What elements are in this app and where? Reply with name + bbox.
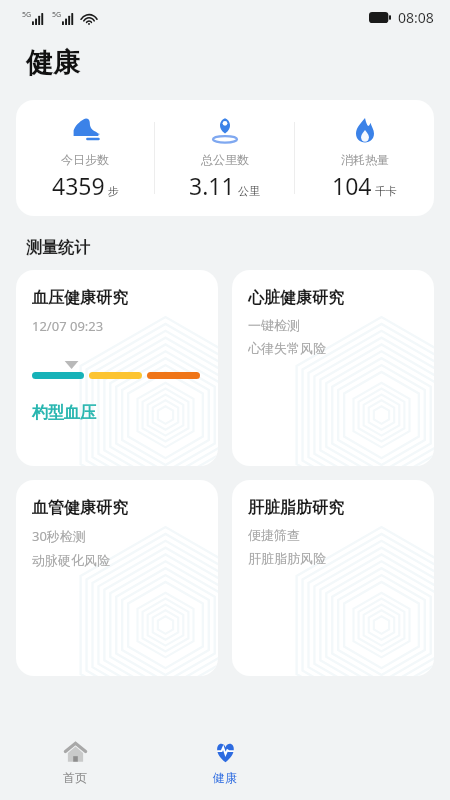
button[interactable]: 肝脏脂肪研究	[232, 480, 434, 676]
staticText: 健康	[26, 46, 80, 80]
staticText: 总公里数	[201, 152, 249, 167]
staticText: 首页	[63, 770, 87, 785]
staticText: 08:08	[398, 8, 434, 27]
other: 总公里数	[210, 115, 240, 145]
staticText: 12/07 09:23	[32, 317, 104, 335]
staticText: 104	[332, 170, 372, 201]
staticText: 5G	[22, 10, 32, 20]
staticText: 便捷筛查	[248, 527, 300, 543]
staticText: 肝脏脂肪研究	[248, 498, 344, 518]
staticText: 血压健康研究	[32, 288, 128, 308]
staticText: 一键检测	[248, 317, 300, 333]
staticText: 5G	[52, 10, 62, 20]
button[interactable]: 首页	[0, 726, 150, 800]
staticText: 公里	[238, 184, 260, 198]
button[interactable]: 血管健康研究	[16, 480, 218, 676]
staticText: 3.11	[189, 170, 235, 201]
staticText: 30秒检测	[32, 527, 86, 545]
staticText: 心脏健康研究	[248, 288, 344, 308]
staticText: 杓型血压	[32, 403, 96, 423]
staticText: 千卡	[375, 184, 397, 198]
button[interactable]: 消耗热量	[295, 100, 434, 216]
button[interactable]: 总公里数	[155, 100, 294, 216]
button[interactable]: 今日步数	[16, 100, 434, 216]
button[interactable]: 今日步数	[16, 100, 154, 216]
staticText: 心律失常风险	[248, 340, 326, 356]
staticText: 测量统计	[26, 238, 90, 258]
staticText: 今日步数	[61, 152, 109, 167]
staticText: 步	[108, 184, 119, 198]
staticText: 动脉硬化风险	[32, 552, 110, 568]
other: 消耗热量	[350, 115, 380, 145]
other: 今日步数	[70, 115, 100, 145]
staticText: 健康	[213, 770, 237, 785]
button[interactable]: 健康	[150, 726, 300, 800]
staticText: 肝脏脂肪风险	[248, 550, 326, 566]
button[interactable]: 血压健康研究	[16, 270, 218, 466]
staticText: 4359	[52, 170, 105, 201]
staticText: 消耗热量	[341, 152, 389, 167]
button[interactable]: 心脏健康研究	[232, 270, 434, 466]
staticText: 血管健康研究	[32, 498, 128, 518]
